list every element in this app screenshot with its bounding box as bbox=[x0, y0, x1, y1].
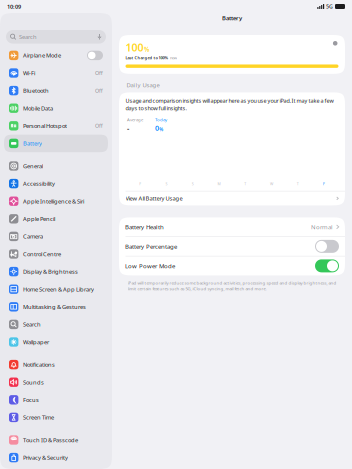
staticText: Daily Usage bbox=[126, 81, 159, 89]
staticText: View All Battery Usage bbox=[125, 194, 182, 202]
button[interactable]: Apple Pencil bbox=[4, 210, 108, 228]
staticText: % bbox=[159, 126, 163, 132]
staticText: Accessibility bbox=[23, 180, 55, 187]
button[interactable]: Search bbox=[4, 316, 108, 333]
button[interactable]: Airplane Mode bbox=[4, 47, 108, 64]
staticText: Today bbox=[155, 117, 167, 123]
staticText: Apple Intelligence & Siri bbox=[23, 197, 84, 205]
staticText: Battery Health bbox=[125, 223, 164, 231]
staticText: T bbox=[297, 181, 299, 186]
staticText: Multitasking & Gestures bbox=[23, 303, 86, 311]
staticText: Touch ID & Passcode bbox=[23, 436, 78, 444]
button[interactable]: Sounds bbox=[4, 373, 108, 391]
staticText: Battery bbox=[222, 14, 242, 22]
button[interactable]: Display & Brightness bbox=[4, 263, 108, 280]
staticText: Apple Pencil bbox=[23, 215, 55, 223]
staticText: T bbox=[244, 181, 246, 186]
button[interactable]: Wallpaper bbox=[4, 333, 108, 351]
button[interactable]: Home Screen & App Library bbox=[4, 280, 108, 298]
staticText: S bbox=[165, 181, 167, 186]
button[interactable]: Battery Percentage bbox=[119, 237, 345, 256]
button[interactable]: Bluetooth bbox=[4, 82, 108, 99]
staticText: iPad will temporarily reduce some backgr… bbox=[127, 280, 336, 291]
staticText: 5G bbox=[326, 3, 333, 10]
staticText: Airplane Mode bbox=[23, 51, 61, 59]
button[interactable]: View All Battery Usage bbox=[119, 191, 345, 205]
button[interactable]: Mobile Data bbox=[4, 99, 108, 117]
staticText: 10:09 bbox=[7, 3, 21, 10]
staticText: Notifications bbox=[23, 361, 55, 368]
staticText: Home Screen & App Library bbox=[23, 285, 94, 293]
staticText: Normal bbox=[311, 223, 333, 231]
button[interactable]: Screen Time bbox=[4, 409, 108, 426]
button[interactable]: Touch ID & Passcode bbox=[4, 431, 108, 449]
button[interactable]: Low Power Mode bbox=[119, 256, 345, 275]
staticText: Focus bbox=[23, 396, 39, 404]
staticText: Wi-Fi bbox=[23, 69, 35, 77]
staticText: Off bbox=[95, 69, 103, 77]
staticText: Search bbox=[23, 320, 41, 328]
button[interactable]: Multitasking & Gestures bbox=[4, 298, 108, 316]
button[interactable]: Focus bbox=[4, 391, 108, 409]
staticText: F bbox=[323, 181, 325, 186]
button[interactable]: Battery Health bbox=[119, 217, 345, 236]
staticText: Privacy & Security bbox=[23, 454, 68, 461]
staticText: S bbox=[192, 181, 194, 186]
button[interactable]: Privacy & Security bbox=[4, 449, 108, 466]
staticText: W bbox=[270, 181, 273, 186]
staticText: - bbox=[127, 123, 129, 133]
staticText: now bbox=[170, 55, 177, 60]
staticText: F bbox=[139, 181, 141, 186]
button[interactable]: Battery bbox=[4, 135, 108, 152]
staticText: Control Centre bbox=[23, 250, 61, 258]
button[interactable]: Control Centre bbox=[4, 245, 108, 263]
staticText: Off bbox=[95, 87, 103, 94]
staticText: Usage and comparison insights will appea… bbox=[125, 97, 333, 112]
staticText: Mobile Data bbox=[23, 104, 53, 112]
button[interactable]: Notifications bbox=[4, 356, 108, 373]
staticText: Personal Hotspot bbox=[23, 122, 67, 130]
button[interactable]: Search bbox=[6, 30, 106, 44]
staticText: Bluetooth bbox=[23, 87, 49, 94]
staticText: Screen Time bbox=[23, 413, 54, 421]
staticText: M bbox=[217, 181, 220, 186]
button[interactable]: Camera bbox=[4, 228, 108, 245]
button[interactable]: Personal Hotspot bbox=[4, 117, 108, 135]
staticText: Last Charged to 100% bbox=[125, 55, 168, 60]
staticText: Wallpaper bbox=[23, 338, 49, 346]
staticText: % bbox=[144, 45, 149, 54]
staticText: Off bbox=[95, 122, 103, 129]
button[interactable]: Apple Intelligence & Siri bbox=[4, 192, 108, 210]
staticText: Average bbox=[127, 117, 143, 123]
staticText: Battery bbox=[23, 139, 42, 147]
staticText: General bbox=[23, 162, 43, 170]
staticText: Battery Percentage bbox=[125, 242, 177, 250]
staticText: 0 bbox=[155, 123, 159, 133]
staticText: 100 bbox=[125, 40, 143, 54]
button[interactable]: Wi-Fi bbox=[4, 64, 108, 82]
button[interactable]: Battery information bbox=[332, 40, 338, 47]
staticText: Search bbox=[19, 33, 37, 41]
staticText: Sounds bbox=[23, 378, 44, 386]
button[interactable]: Accessibility bbox=[4, 175, 108, 192]
staticText: Low Power Mode bbox=[125, 262, 175, 270]
staticText: Display & Brightness bbox=[23, 268, 78, 275]
staticText: Camera bbox=[23, 232, 43, 240]
button[interactable]: General bbox=[4, 157, 108, 175]
